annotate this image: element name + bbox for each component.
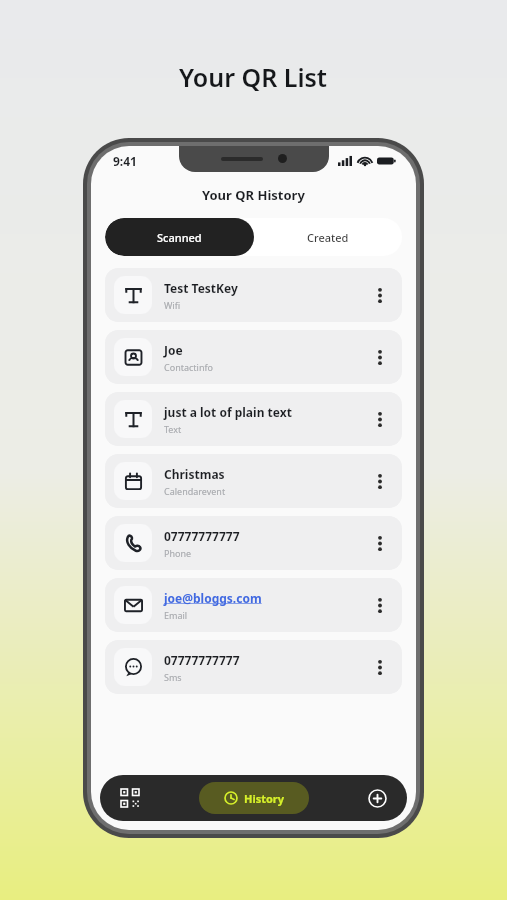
button[interactable]: Test TestKey xyxy=(105,268,402,322)
staticText: Test TestKey xyxy=(164,280,238,296)
button[interactable]: More options xyxy=(367,516,393,570)
button[interactable]: Joe xyxy=(105,330,402,384)
button[interactable]: just a lot of plain text xyxy=(105,392,402,446)
staticText: 07777777777 xyxy=(164,652,240,668)
staticText: 9:41 xyxy=(113,153,137,169)
staticText: Created xyxy=(307,230,349,245)
button[interactable]: 07777777777 xyxy=(105,516,402,570)
staticText: Joe xyxy=(164,342,183,358)
button[interactable]: History xyxy=(199,782,309,814)
staticText: Your QR List xyxy=(179,60,328,94)
button[interactable]: Scanned xyxy=(105,218,254,256)
staticText: Contactinfo xyxy=(164,361,213,373)
button[interactable]: Scan QR code xyxy=(112,780,148,816)
button[interactable]: More options xyxy=(367,454,393,508)
staticText: Scanned xyxy=(157,230,202,245)
staticText: Sms xyxy=(164,671,182,683)
staticText: Christmas xyxy=(164,466,225,482)
button[interactable]: Created xyxy=(253,218,402,256)
staticText: Text xyxy=(164,423,182,435)
staticText: Wifi xyxy=(164,299,181,311)
staticText: just a lot of plain text xyxy=(164,404,292,420)
staticText: Phone xyxy=(164,547,192,559)
button[interactable]: More options xyxy=(367,330,393,384)
button[interactable]: More options xyxy=(367,578,393,632)
button[interactable]: Create new QR code xyxy=(359,780,395,816)
button[interactable]: More options xyxy=(367,392,393,446)
staticText: Email xyxy=(164,609,188,621)
staticText: 07777777777 xyxy=(164,528,240,544)
button[interactable]: Christmas xyxy=(105,454,402,508)
button[interactable]: More options xyxy=(367,268,393,322)
button[interactable]: 07777777777 xyxy=(105,640,402,694)
staticText: joe@bloggs.com xyxy=(164,590,262,606)
staticText: Your QR History xyxy=(202,186,305,204)
staticText: History xyxy=(244,791,285,806)
button[interactable]: More options xyxy=(367,640,393,694)
staticText: Calendarevent xyxy=(164,485,226,497)
button[interactable]: joe@bloggs.com xyxy=(105,578,402,632)
